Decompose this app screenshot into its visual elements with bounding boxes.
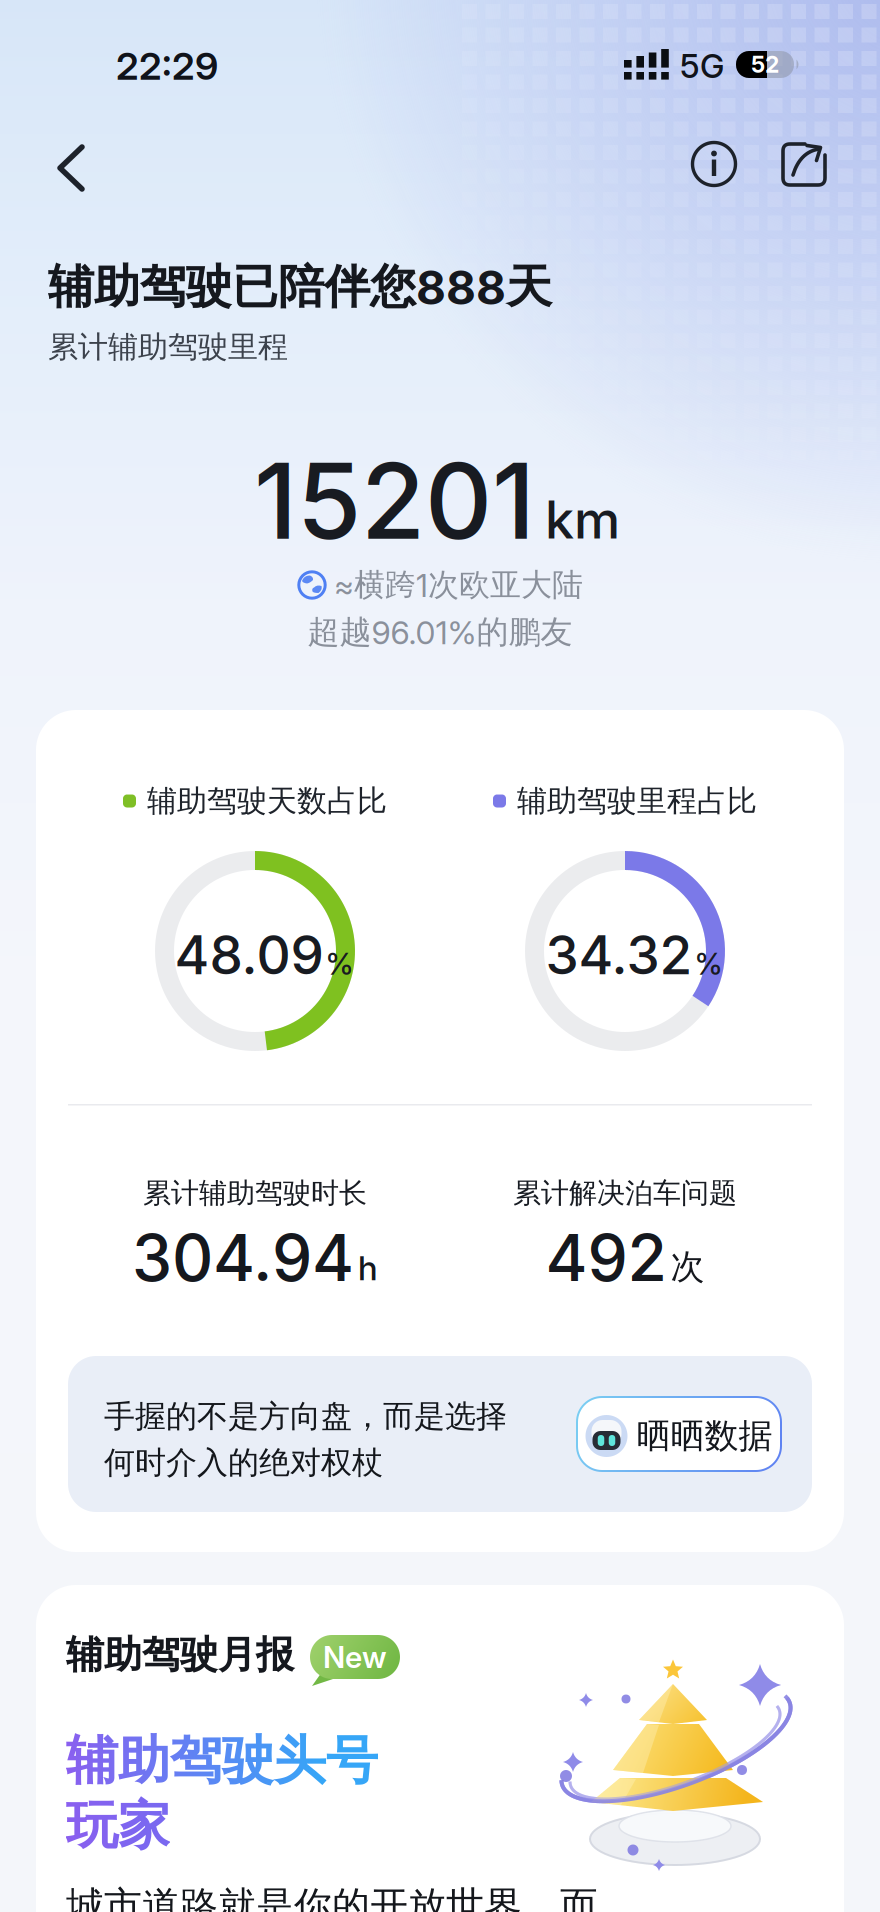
button[interactable]: Info [690, 140, 738, 188]
staticText: 22:29 [116, 43, 218, 89]
staticText: h [358, 1247, 378, 1288]
button[interactable]: 晒晒数据 [576, 1396, 782, 1472]
staticText: 304.94 [132, 1219, 354, 1296]
staticText: 辅助驾驶已陪伴您888天 [48, 258, 552, 316]
staticText: 辅助驾驶头号 [66, 1728, 378, 1793]
staticText: 辅助驾驶月报 [66, 1631, 294, 1679]
staticText: % [325, 946, 353, 982]
staticText: 5G [680, 46, 724, 86]
staticText: km [545, 488, 620, 551]
staticText: % [694, 946, 722, 982]
staticText: 累计解决泊车问题 [513, 1176, 737, 1211]
staticText: 492 [545, 1219, 666, 1296]
staticText: 辅助驾驶里程占比 [517, 782, 757, 820]
button[interactable]: 辅助驾驶月报 [36, 1585, 844, 1912]
staticText: 34.32 [545, 923, 692, 987]
button[interactable]: Share [779, 139, 829, 189]
button[interactable]: Back [52, 143, 92, 193]
staticText: New [323, 1639, 387, 1675]
staticText: 城市道路就是你的开放世界，而 [66, 1882, 598, 1912]
staticText: ≈横跨1次欧亚大陆 [334, 565, 583, 605]
staticText: 15201 [254, 438, 535, 564]
staticText: 次 [670, 1245, 704, 1288]
staticText: 超越96.01%的鹏友 [307, 612, 572, 652]
staticText: 辅助驾驶天数占比 [147, 782, 387, 820]
staticText: 何时介入的绝对权杖 [104, 1443, 383, 1482]
staticText: 玩家 [66, 1793, 170, 1858]
staticText: 累计辅助驾驶里程 [48, 328, 288, 366]
staticText: 累计辅助驾驶时长 [143, 1176, 367, 1211]
staticText: 手握的不是方向盘，而是选择 [104, 1397, 507, 1436]
staticText: 48.09 [174, 923, 323, 987]
staticText: 52 [751, 51, 779, 78]
staticText: 晒晒数据 [636, 1415, 772, 1457]
